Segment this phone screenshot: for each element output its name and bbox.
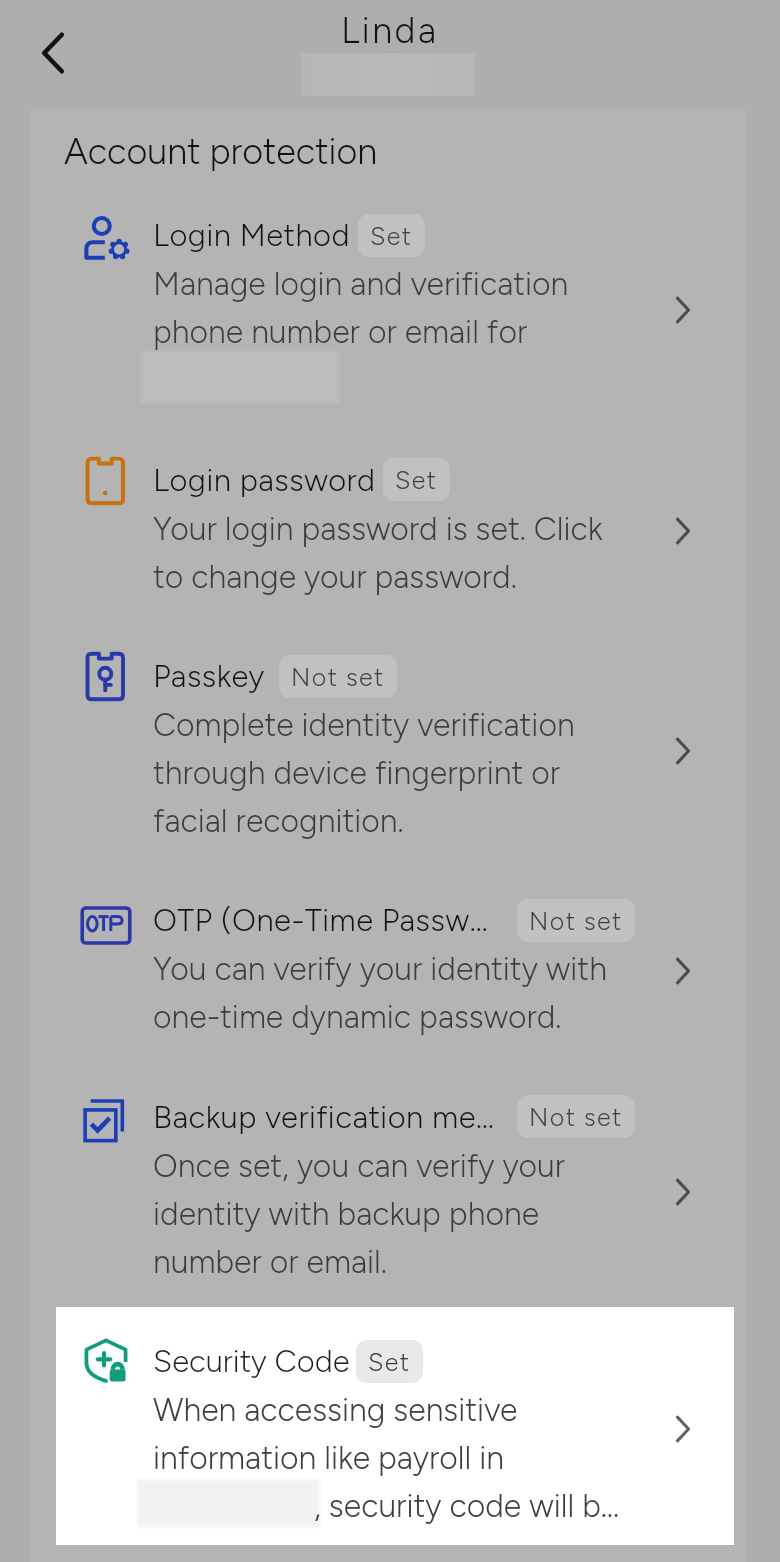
button[interactable] (31, 643, 746, 857)
staticText: phone number or email for (153, 313, 528, 351)
staticText: number or email. (153, 1243, 387, 1281)
staticText: You can verify your identity with (153, 950, 607, 988)
staticText: facial recognition. (153, 802, 404, 840)
staticText: one-time dynamic password. (153, 998, 562, 1036)
staticText: , security code will b… (314, 1487, 620, 1525)
staticText: identity with backup phone (153, 1195, 540, 1233)
staticText: Login Method (153, 217, 351, 254)
staticText: Passkey (153, 658, 265, 695)
button[interactable] (31, 202, 746, 416)
staticText: Security Code (153, 1343, 350, 1380)
staticText: Not set (529, 906, 623, 936)
staticText: Set (395, 465, 438, 495)
staticText: Linda (341, 9, 439, 52)
staticText: Not set (291, 662, 385, 692)
button[interactable] (31, 447, 746, 613)
staticText: Login password (153, 462, 376, 499)
button[interactable] (56, 1307, 734, 1545)
staticText: Backup verification me… (153, 1099, 495, 1136)
staticText: Set (370, 221, 413, 251)
staticText: Account protection (64, 130, 378, 173)
staticText: OTP (One-Time Passw… (153, 902, 489, 939)
staticText: information like payroll in (153, 1439, 504, 1477)
staticText: Once set, you can verify your (153, 1147, 565, 1185)
staticText: Set (368, 1347, 411, 1377)
button[interactable] (31, 1084, 746, 1298)
staticText: When accessing sensitive (153, 1391, 518, 1429)
staticText: Manage login and verification (153, 265, 569, 303)
button[interactable]: Back (22, 22, 84, 84)
staticText: Complete identity verification (153, 706, 575, 744)
staticText: through device fingerprint or (153, 754, 561, 792)
staticText: Not set (529, 1102, 623, 1132)
staticText: to change your password. (153, 558, 517, 596)
button[interactable] (31, 887, 746, 1053)
staticText: Your login password is set. Click (153, 510, 603, 548)
